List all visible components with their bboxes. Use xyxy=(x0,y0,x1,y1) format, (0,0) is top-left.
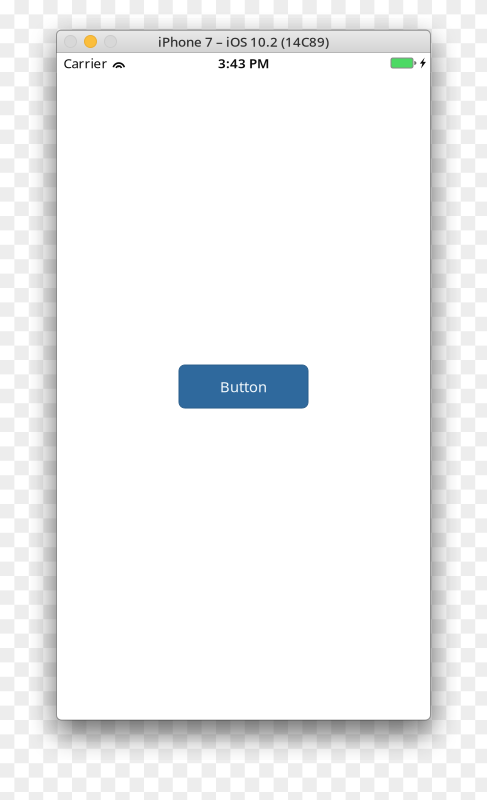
button[interactable]: Close xyxy=(64,35,76,47)
button[interactable]: Zoom xyxy=(104,35,116,47)
staticText: 3:43 PM xyxy=(218,54,269,72)
button[interactable]: Button xyxy=(179,365,308,408)
staticText: Button xyxy=(220,377,267,396)
staticText: Carrier xyxy=(63,54,107,72)
staticText: iPhone 7 – iOS 10.2 (14C89) xyxy=(158,33,329,50)
button[interactable]: Minimize xyxy=(84,35,96,47)
